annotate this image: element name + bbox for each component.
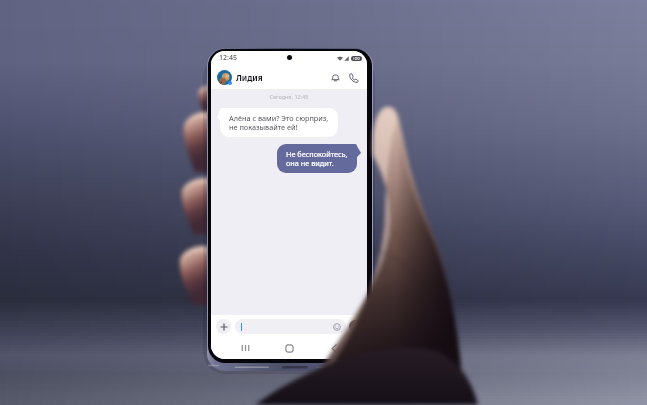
staticText: Сегодня, 12:45 <box>217 93 361 100</box>
staticText: Не беспокойтесь, она не видит. <box>286 149 348 168</box>
button[interactable]: Recents <box>234 338 256 358</box>
button[interactable]: Не беспокойтесь, она не видит. <box>277 144 357 173</box>
button[interactable] <box>235 319 346 334</box>
button[interactable]: Attach <box>216 319 231 334</box>
button[interactable]: Алёна с вами? Это сюрприз, не показывайт… <box>220 108 338 137</box>
button[interactable]: Notifications <box>327 69 344 86</box>
button[interactable]: Profile Лидия <box>217 70 232 85</box>
staticText: Лидия <box>236 72 263 83</box>
button[interactable]: Voice message <box>349 320 362 333</box>
button[interactable]: Back <box>323 338 345 358</box>
button[interactable]: Home <box>278 338 300 358</box>
button[interactable]: Call <box>345 69 362 86</box>
staticText: 12:45 <box>219 53 237 63</box>
staticText: Алёна с вами? Это сюрприз, не показывайт… <box>229 113 329 132</box>
